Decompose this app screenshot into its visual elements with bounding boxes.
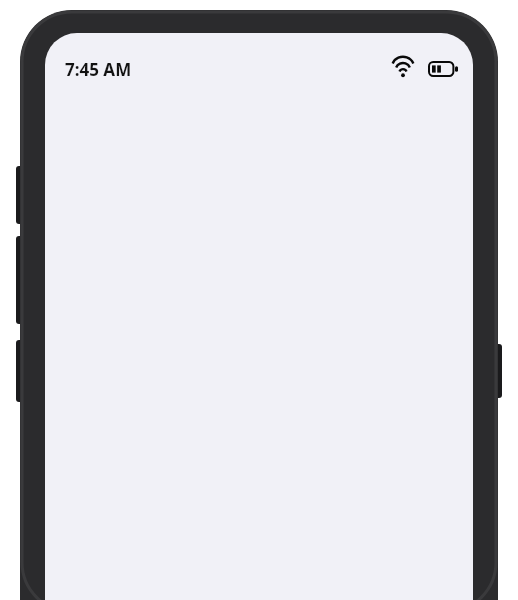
button[interactable]: Wi-Fi signal	[392, 60, 414, 78]
button[interactable]: 7:45 AM	[65, 58, 132, 81]
button[interactable]: Battery level	[428, 61, 458, 77]
